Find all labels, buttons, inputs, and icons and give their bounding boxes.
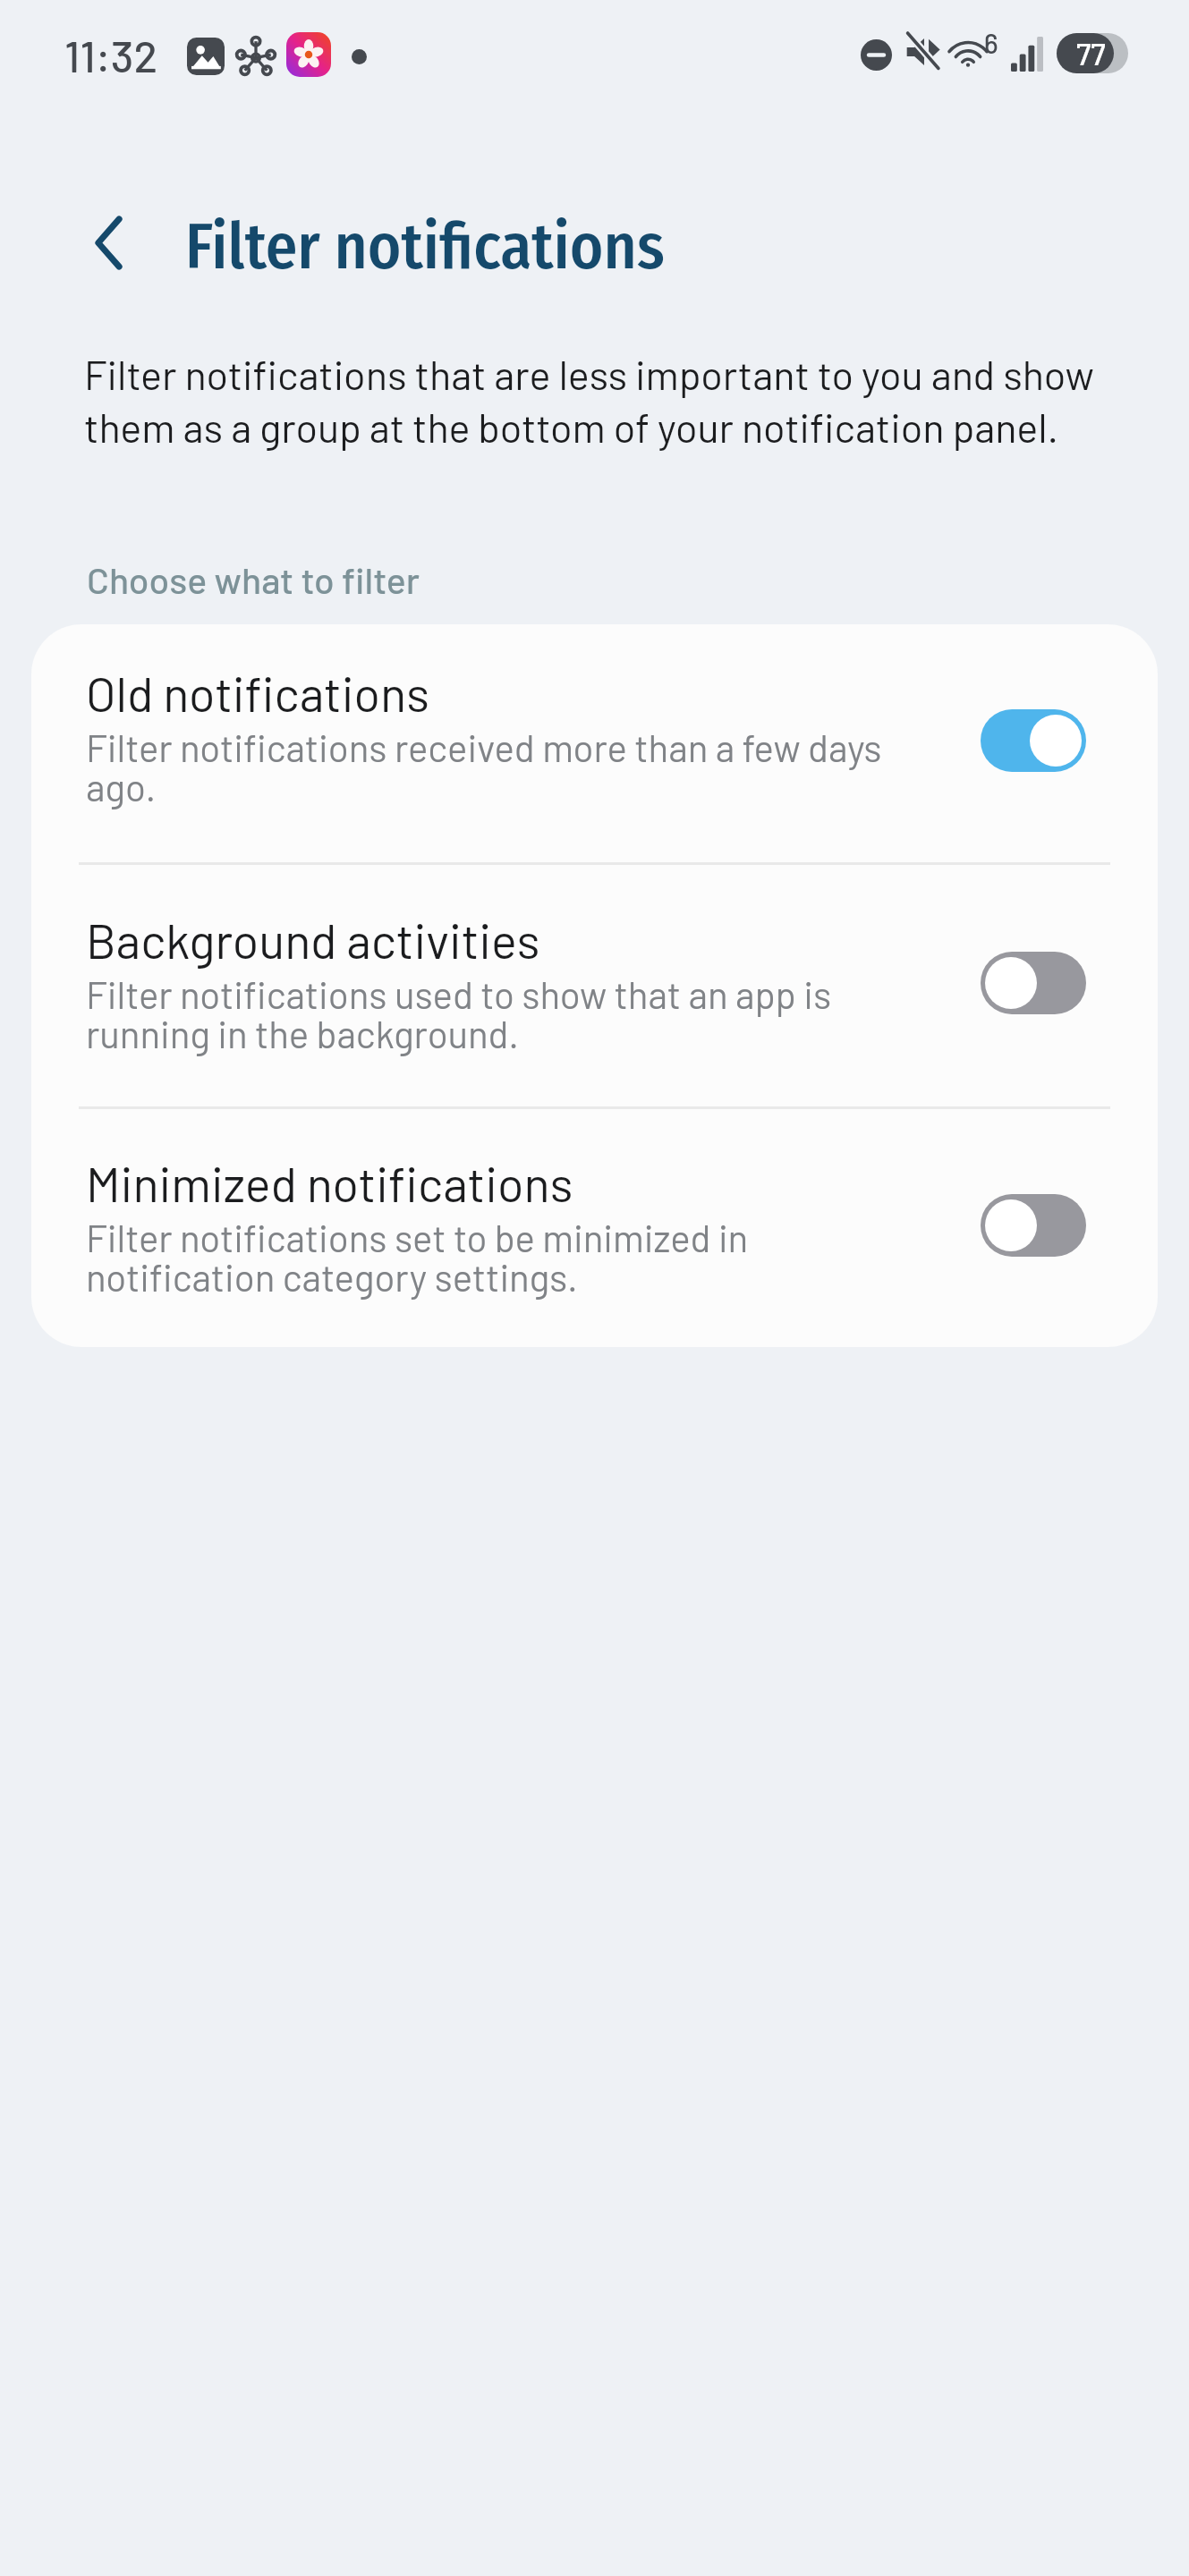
staticText: Choose what to filter xyxy=(87,557,420,601)
button[interactable]: Minimized notifications xyxy=(31,1109,1158,1347)
staticText: Old notifications xyxy=(86,664,429,722)
staticText: Filter notifications that are less impor… xyxy=(84,350,1113,451)
button[interactable]: Minimized notifications, off xyxy=(981,1194,1086,1257)
staticText: Filter notifications set to be minimized… xyxy=(86,1215,896,1299)
staticText: Filter notifications xyxy=(185,209,665,285)
staticText: 77 xyxy=(1076,35,1106,72)
button[interactable]: Navigate up xyxy=(55,190,161,295)
staticText: Filter notifications received more than … xyxy=(86,724,896,809)
staticText: Background activities xyxy=(86,911,540,969)
button[interactable]: Old notifications, on xyxy=(981,709,1086,772)
button[interactable]: Old notifications xyxy=(31,624,1158,862)
staticText: 11:32 xyxy=(64,29,158,81)
button[interactable]: Background activities xyxy=(31,865,1158,1106)
staticText: 6 xyxy=(984,27,998,59)
button[interactable]: Background activities, off xyxy=(981,952,1086,1014)
staticText: Filter notifications used to show that a… xyxy=(86,971,896,1055)
staticText: Minimized notifications xyxy=(86,1154,573,1212)
